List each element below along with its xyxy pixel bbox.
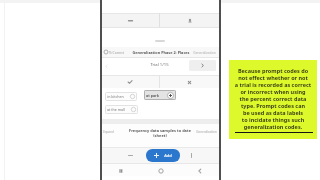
staticText: Generalization (196, 130, 217, 134)
button[interactable]: Next trial (189, 60, 216, 71)
staticText: Trial 1/15 (150, 62, 169, 68)
staticText: Generalization Phase 2: Places (132, 50, 190, 55)
staticText: % Correct (109, 50, 124, 54)
button[interactable]: Back (180, 164, 219, 177)
button[interactable]: at the mall (105, 105, 138, 114)
staticText: Add (164, 153, 172, 158)
button[interactable]: at park (144, 90, 176, 100)
staticText: Frequency data samples to date (sheet) (127, 128, 193, 138)
staticText: Because prompt codes do not effect wheth… (229, 67, 317, 130)
button[interactable]: % Correct (104, 50, 124, 54)
staticText: in kitchen (107, 94, 124, 99)
staticText: at park (146, 93, 159, 98)
button[interactable]: Recents (101, 164, 141, 177)
button[interactable]: Download (185, 149, 197, 161)
staticText: Generalization (193, 50, 216, 54)
staticText: at the mall (107, 107, 125, 112)
button[interactable]: Previous (101, 58, 111, 74)
button[interactable]: Correct (101, 75, 159, 89)
button[interactable]: Add (146, 149, 180, 162)
button[interactable]: Student (160, 13, 219, 28)
button[interactable]: Incorrect (160, 75, 219, 89)
staticText: Expand (103, 130, 114, 134)
button[interactable]: in kitchen (105, 92, 137, 101)
button[interactable]: Undo (101, 13, 159, 28)
button[interactable]: Remove (124, 149, 136, 161)
button[interactable]: Home (141, 164, 180, 177)
